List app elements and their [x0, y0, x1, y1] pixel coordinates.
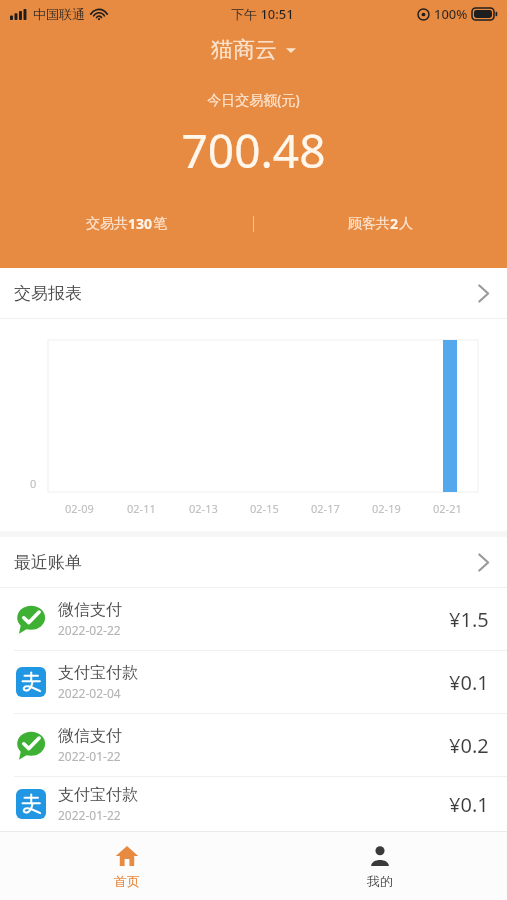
staticText: 交易报表: [14, 283, 82, 304]
staticText: 最近账单: [14, 552, 82, 573]
staticText: 中国联通: [33, 6, 85, 22]
staticText: 130: [128, 214, 153, 233]
staticText: ¥1.5: [449, 606, 489, 633]
staticText: 笔: [153, 215, 167, 233]
staticText: 微信支付: [58, 726, 122, 746]
button[interactable]: 交易报表: [0, 268, 507, 318]
staticText: 首页: [114, 873, 140, 889]
button[interactable]: 交易共: [0, 214, 253, 233]
button[interactable]: 最近账单: [0, 537, 507, 587]
staticText: 02-19: [372, 501, 401, 516]
staticText: 下午 10:51: [231, 5, 294, 23]
staticText: 2: [390, 214, 399, 233]
staticText: 02-13: [189, 501, 218, 516]
staticText: 02-17: [311, 501, 340, 516]
staticText: 02-11: [127, 501, 156, 516]
staticText: 猫商云: [211, 36, 277, 64]
staticText: 微信支付: [58, 600, 122, 620]
staticText: 0: [30, 476, 37, 491]
button[interactable]: 支付宝付款: [0, 776, 507, 831]
staticText: 今日交易额(元): [0, 90, 507, 109]
button[interactable]: 支付宝付款: [0, 650, 507, 713]
staticText: 700.48: [0, 119, 507, 182]
button[interactable]: 首页: [0, 832, 253, 900]
staticText: ¥0.1: [449, 791, 489, 818]
button[interactable]: 我的: [253, 832, 507, 900]
staticText: ¥0.1: [449, 669, 489, 696]
staticText: 2022-02-04: [58, 685, 121, 701]
staticText: 2022-02-22: [58, 622, 121, 638]
button[interactable]: 微信支付: [0, 713, 507, 776]
staticText: 100%: [434, 5, 468, 23]
staticText: 支付宝付款: [58, 785, 138, 805]
button[interactable]: 微信支付: [0, 588, 507, 650]
staticText: 支付宝付款: [58, 663, 138, 683]
staticText: 人: [399, 215, 413, 233]
staticText: ¥0.2: [449, 732, 489, 759]
button[interactable]: 猫商云: [0, 36, 507, 64]
staticText: 2022-01-22: [58, 748, 121, 764]
staticText: 顾客共: [348, 215, 390, 233]
staticText: 我的: [367, 873, 393, 889]
staticText: 交易共: [86, 215, 128, 233]
staticText: 02-21: [433, 501, 462, 516]
staticText: 02-15: [250, 501, 279, 516]
button[interactable]: 顾客共: [254, 214, 507, 233]
staticText: 02-09: [65, 501, 94, 516]
staticText: 2022-01-22: [58, 807, 121, 823]
